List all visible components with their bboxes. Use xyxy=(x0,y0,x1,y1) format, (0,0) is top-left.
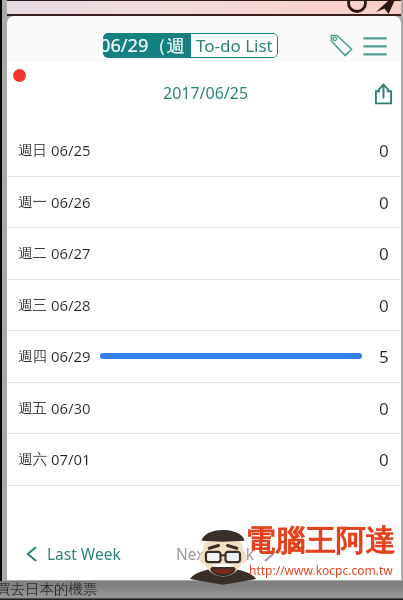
staticText: 週三 xyxy=(18,296,48,314)
staticText: 0 xyxy=(379,397,389,420)
staticText: 週二 xyxy=(18,244,48,262)
staticText: 06/25 xyxy=(51,140,91,160)
staticText: Next Week xyxy=(176,543,254,564)
button[interactable]: 週三 xyxy=(7,279,401,331)
staticText: 06/27 xyxy=(51,243,91,263)
button[interactable]: 週日 xyxy=(7,124,401,176)
button[interactable]: 週二 xyxy=(7,227,401,279)
staticText: 週四 xyxy=(18,347,48,365)
staticText: 週五 xyxy=(18,399,48,417)
staticText: http://www.kocpc.com.tw xyxy=(249,562,393,578)
staticText: 週一 xyxy=(18,193,48,211)
staticText: 0 xyxy=(379,139,389,162)
button[interactable]: 週一 xyxy=(7,176,401,228)
button[interactable]: Share xyxy=(368,78,398,108)
staticText: 買去日本的機票 xyxy=(0,580,98,598)
staticText: 5 xyxy=(379,345,389,368)
staticText: 0 xyxy=(379,448,389,471)
button[interactable]: 週四 xyxy=(7,330,401,382)
staticText: 週六 xyxy=(18,450,48,468)
staticText: 電腦王阿達 xyxy=(245,522,395,560)
staticText: 週日 xyxy=(18,141,48,159)
staticText: 06/29 xyxy=(51,346,91,366)
staticText: 06/26 xyxy=(51,192,91,212)
staticText: 06/30 xyxy=(51,398,91,418)
staticText: 06/29（週 xyxy=(103,33,185,58)
staticText: To-do List xyxy=(196,34,273,57)
staticText: 2017/06/25 xyxy=(163,82,249,104)
button[interactable]: 週六 xyxy=(7,433,401,485)
button[interactable]: Tags xyxy=(326,30,356,60)
button[interactable]: To-do List xyxy=(190,33,278,58)
button[interactable]: Last Week xyxy=(24,543,121,564)
staticText: Last Week xyxy=(47,543,121,564)
staticText: 06/28 xyxy=(51,295,91,315)
staticText: 0 xyxy=(379,191,389,214)
button[interactable]: Menu xyxy=(360,30,390,60)
button[interactable]: 06/29（週 xyxy=(103,33,190,58)
staticText: 07/01 xyxy=(51,449,91,469)
staticText: 0 xyxy=(379,294,389,317)
button[interactable]: Next Week xyxy=(176,543,277,564)
button[interactable]: 週五 xyxy=(7,382,401,434)
button[interactable]: Record xyxy=(13,69,26,82)
staticText: 0 xyxy=(379,242,389,265)
